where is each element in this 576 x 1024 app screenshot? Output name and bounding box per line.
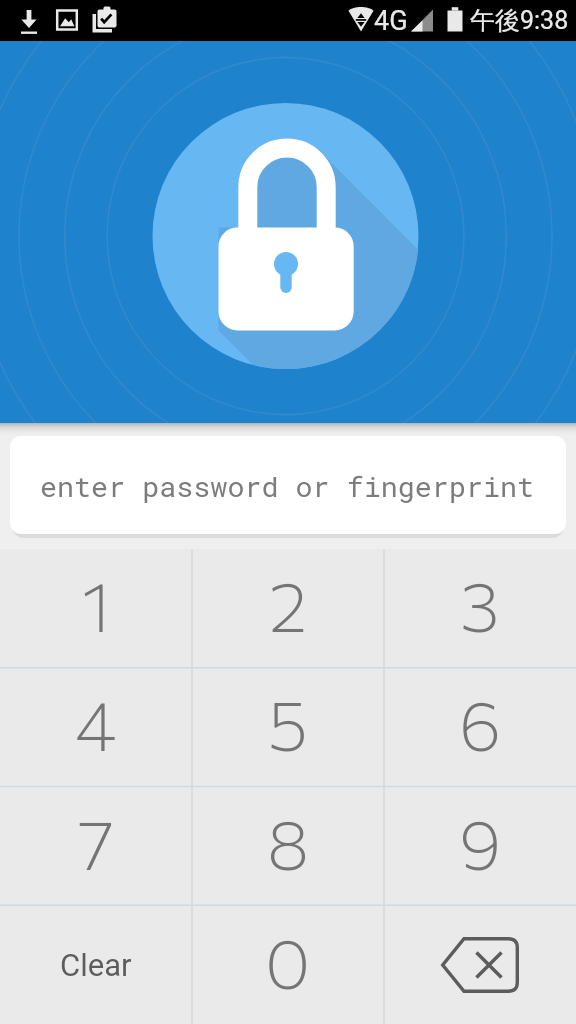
button[interactable]: 3 [384,549,576,667]
button[interactable]: 9 [384,786,576,905]
staticText: 7 [78,799,115,885]
staticText: 9 [459,799,502,885]
staticText: 4G [374,5,408,37]
button[interactable]: 7 [0,786,192,905]
button[interactable]: 5 [192,667,384,786]
button[interactable]: 6 [384,667,576,786]
staticText: 5 [268,680,308,766]
staticText: enter password or fingerprint [40,467,535,504]
staticText: 8 [267,799,310,885]
staticText: Clear [60,947,132,983]
staticText: 4 [75,680,117,766]
staticText: 2 [269,561,308,647]
staticText: 午後9:38 [470,5,569,36]
button[interactable]: enter password or fingerprint [10,436,566,534]
staticText: 1 [82,561,111,647]
button[interactable]: 0 [192,905,384,1024]
button[interactable]: Clear [0,905,192,1024]
staticText: 6 [459,680,502,766]
button[interactable]: 2 [192,549,384,667]
staticText: 0 [265,918,311,1004]
button[interactable]: 4 [0,667,192,786]
button[interactable]: Backspace [384,905,576,1024]
staticText: 3 [460,561,500,647]
button[interactable]: 1 [0,549,192,667]
button[interactable]: 8 [192,786,384,905]
